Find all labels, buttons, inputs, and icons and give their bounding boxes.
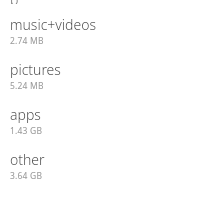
staticText: 5.24 MB [10,80,44,92]
staticText: music+videos [10,15,97,34]
staticText: 3.64 GB [10,170,43,182]
button[interactable]: apps [0,92,200,137]
staticText: apps [10,105,41,124]
button[interactable]: music+videos [0,0,200,47]
button[interactable]: pictures [0,47,200,92]
staticText: pictures [10,60,61,79]
staticText: 1.43 GB [10,125,43,137]
staticText: 2.74 MB [10,35,44,47]
staticText: p [10,0,19,4]
staticText: other [10,150,45,169]
button[interactable]: other [0,137,200,182]
